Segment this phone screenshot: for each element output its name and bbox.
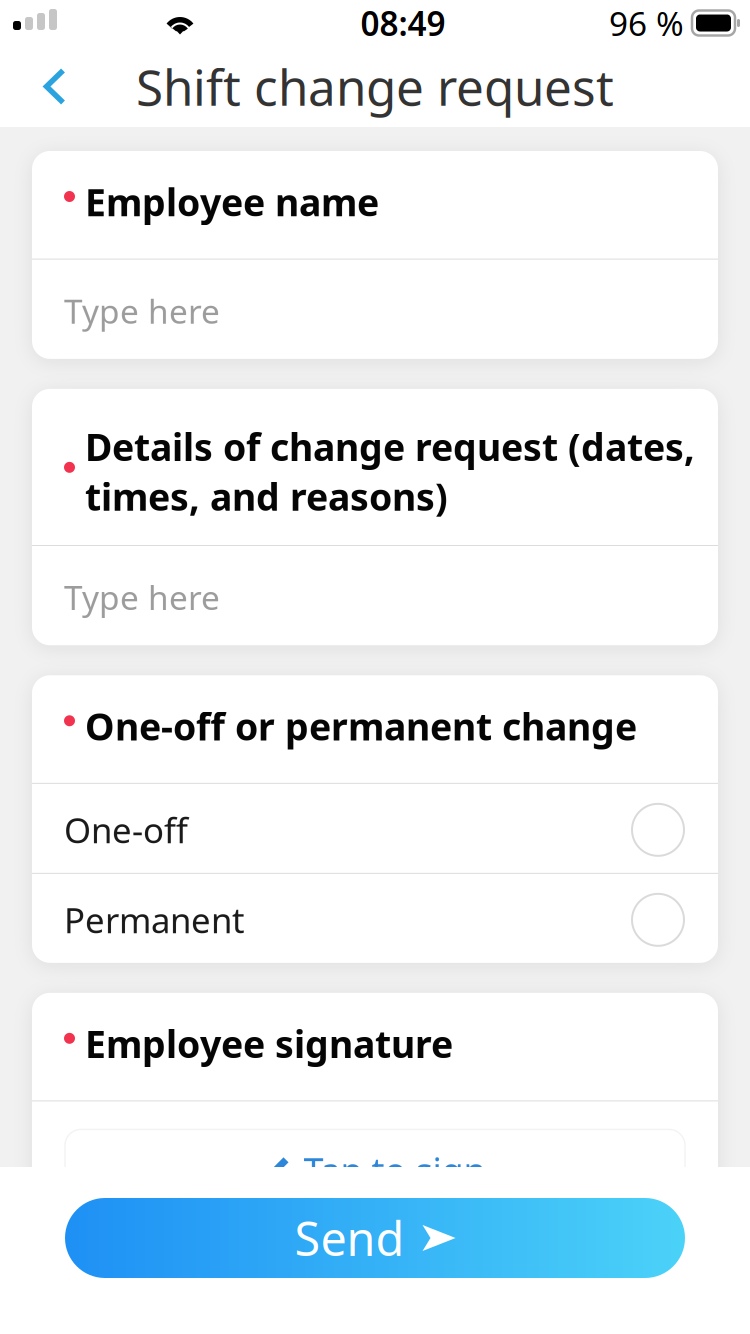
staticText: Employee signature: [85, 1019, 453, 1068]
button[interactable]: Type here: [32, 260, 718, 359]
button[interactable]: Type here: [32, 546, 718, 645]
button[interactable]: Send: [65, 1198, 685, 1278]
staticText: Type here: [64, 575, 220, 619]
staticText: Send: [294, 1207, 404, 1269]
button[interactable]: Back: [0, 50, 87, 123]
staticText: Permanent: [64, 897, 245, 943]
button[interactable]: Permanent: [32, 874, 718, 963]
staticText: Details of change request (dates, times,…: [85, 422, 695, 521]
button[interactable]: Tap to sign: [32, 1101, 718, 1296]
staticText: Type here: [64, 289, 220, 333]
staticText: 08:49: [360, 1, 445, 45]
staticText: Shift change request: [136, 54, 614, 119]
staticText: One-off: [64, 807, 188, 853]
staticText: 96 %: [609, 1, 684, 45]
staticText: Employee name: [85, 177, 379, 227]
staticText: Tap to sign: [303, 1146, 485, 1194]
staticText: One-off or permanent change: [85, 701, 637, 751]
button[interactable]: One-off: [32, 784, 718, 873]
